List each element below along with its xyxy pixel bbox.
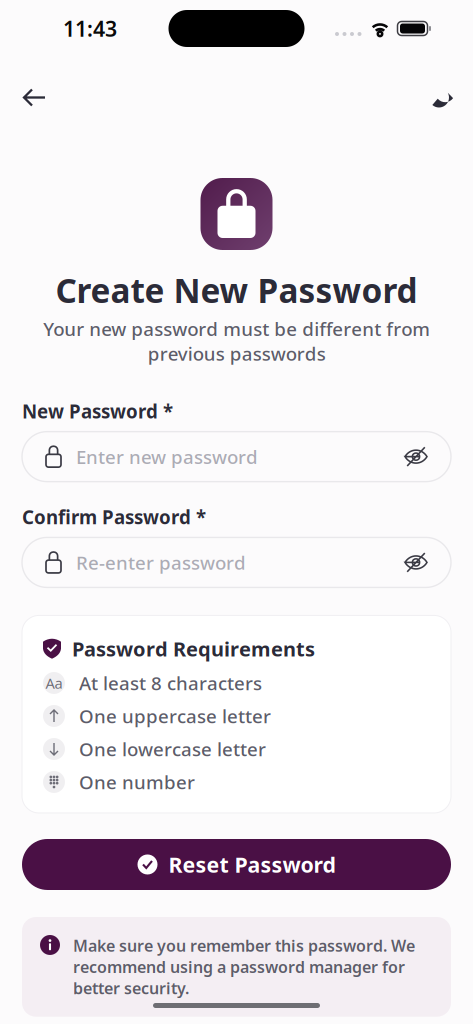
staticText: Aa — [45, 673, 62, 693]
staticText: New Password * — [22, 399, 173, 424]
button[interactable]: Toggle dark mode — [417, 75, 461, 119]
staticText: One number — [79, 770, 195, 794]
button[interactable]: Reset Password — [22, 839, 451, 890]
staticText: Make sure you remember this password. We… — [73, 935, 415, 999]
staticText: Enter new password — [76, 444, 258, 469]
staticText: 11:43 — [63, 14, 117, 43]
staticText: One uppercase letter — [79, 704, 271, 728]
staticText: Your new password must be different from… — [43, 316, 430, 366]
staticText: Password Requirements — [72, 635, 315, 662]
button[interactable]: Show password — [405, 435, 451, 479]
staticText: Reset Password — [168, 850, 335, 879]
button[interactable]: Show password — [405, 540, 451, 584]
staticText: Create New Password — [55, 268, 417, 312]
staticText: One lowercase letter — [79, 737, 266, 761]
staticText: Re-enter password — [76, 550, 246, 575]
staticText: Confirm Password * — [22, 505, 206, 529]
button[interactable]: Back — [12, 77, 57, 117]
staticText: At least 8 characters — [79, 671, 262, 695]
